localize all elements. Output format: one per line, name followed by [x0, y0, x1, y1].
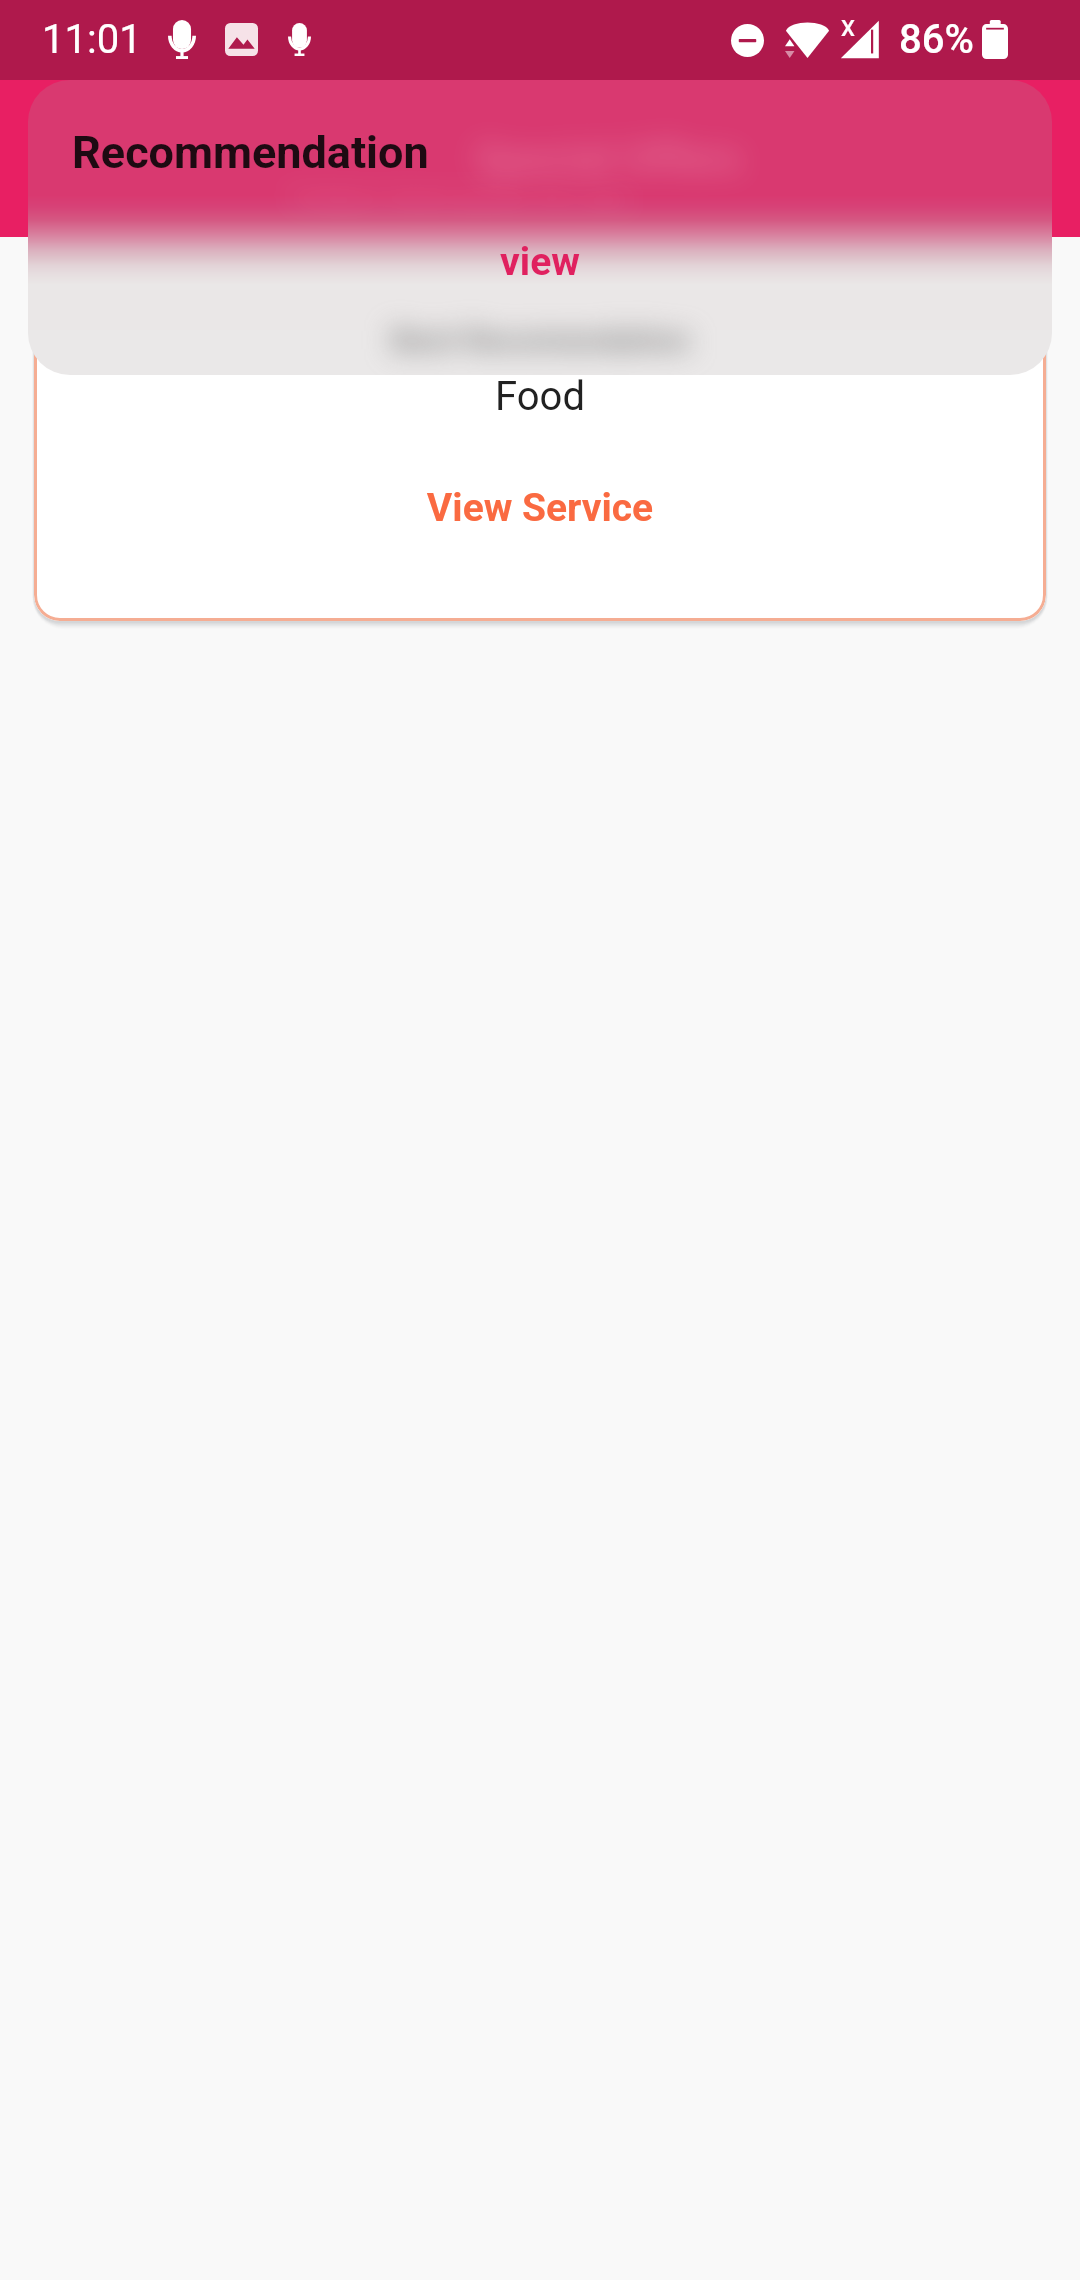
staticText: view [28, 239, 1052, 285]
other: Battery [982, 20, 1008, 59]
staticText: Today's best picks for you [285, 180, 632, 215]
other: Screenshot [225, 23, 258, 56]
other: Microphone [288, 23, 311, 56]
staticText: X [841, 16, 855, 42]
other: Mobile signal [840, 19, 880, 60]
staticText: View Service [34, 485, 1046, 531]
staticText: 11:01 [42, 16, 142, 63]
staticText: Special Offers [474, 134, 742, 183]
other: Wi-Fi [785, 19, 830, 58]
staticText: 86% [899, 16, 974, 63]
other: Do not disturb [731, 24, 764, 57]
staticText: Food [34, 373, 1046, 420]
staticText: Best Recomendation [391, 321, 690, 359]
button[interactable]: Food [34, 300, 1046, 621]
button[interactable]: Special Offers [28, 80, 1052, 375]
other: Microphone [168, 20, 196, 59]
staticText: Recommendation [72, 126, 429, 179]
